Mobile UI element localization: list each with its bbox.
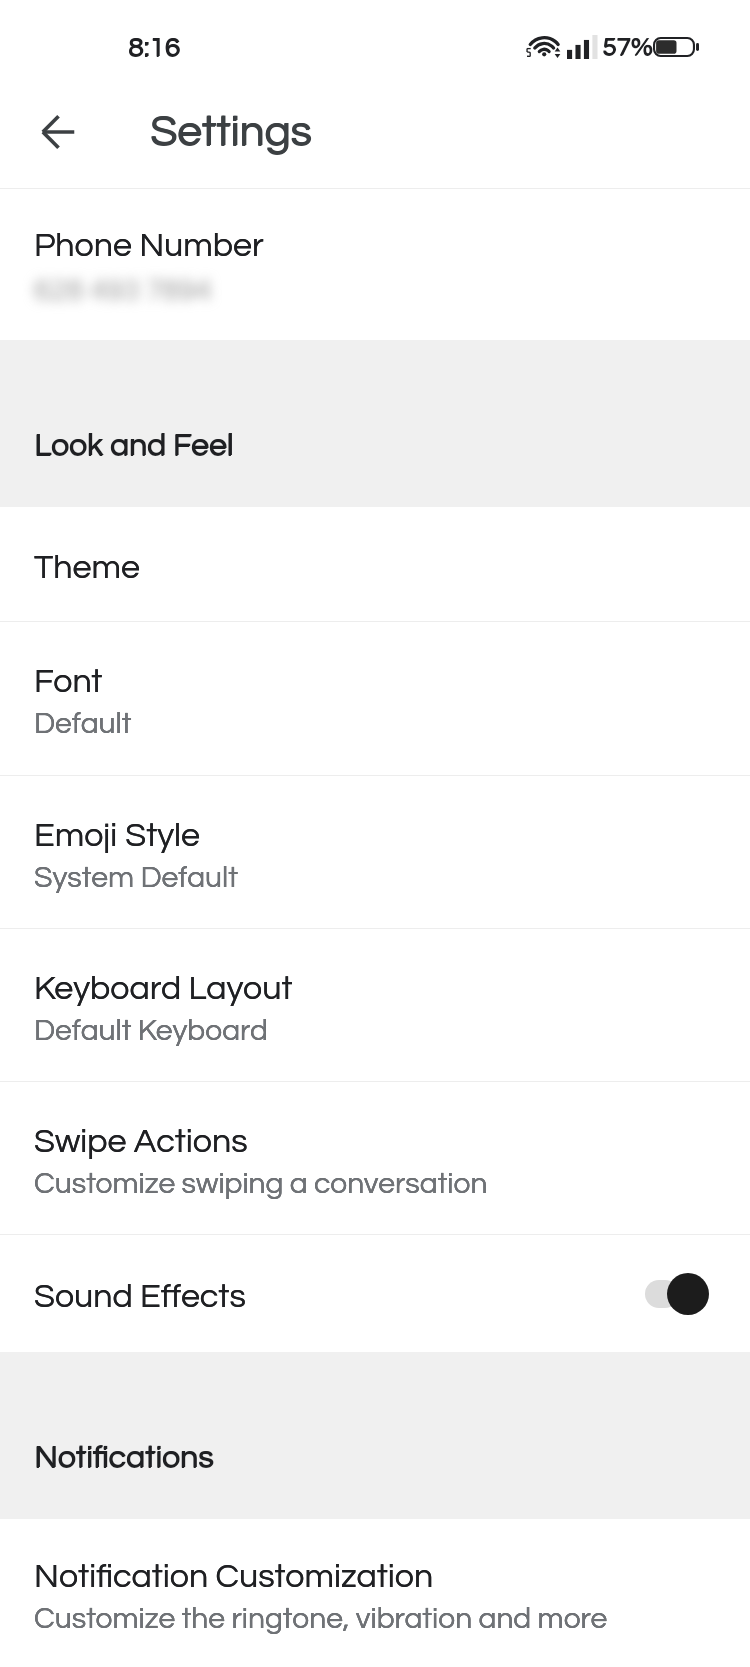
- staticText: Default Keyboard: [34, 1015, 268, 1046]
- staticText: System Default: [34, 862, 238, 893]
- button[interactable]: Notification Customization: [0, 1519, 750, 1667]
- staticText: Notification Customization: [34, 1559, 434, 1594]
- staticText: Notification Customization: [34, 1559, 434, 1594]
- staticText: Look and Feel: [34, 430, 234, 463]
- staticText: Customize the ringtone, vibration and mo…: [34, 1603, 608, 1634]
- staticText: Sound Effects: [34, 1279, 246, 1314]
- staticText: Emoji Style: [34, 818, 201, 853]
- staticText: Theme: [34, 550, 140, 585]
- staticText: Notifications: [34, 1441, 214, 1474]
- staticText: Font: [34, 664, 103, 699]
- staticText: Customize the ringtone, vibration and mo…: [34, 1603, 608, 1634]
- staticText: Look and Feel: [34, 429, 234, 462]
- staticText: Look and Feel: [35, 429, 235, 462]
- staticText: Swipe Actions: [34, 1124, 248, 1159]
- staticText: Emoji Style: [34, 818, 201, 853]
- staticText: Default Keyboard: [34, 1015, 268, 1046]
- staticText: Theme: [34, 550, 140, 585]
- staticText: Font: [34, 664, 103, 699]
- staticText: 57%: [602, 34, 653, 61]
- staticText: 628 493 7894: [34, 275, 212, 306]
- button[interactable]: Emoji Style: [0, 776, 750, 928]
- staticText: Sound Effects: [34, 1279, 246, 1314]
- staticText: Default Keyboard: [34, 1015, 268, 1046]
- staticText: Default: [34, 708, 132, 739]
- staticText: Default: [34, 708, 132, 739]
- staticText: Phone Number: [34, 228, 264, 263]
- button[interactable]: Theme: [0, 507, 750, 621]
- staticText: Phone Number: [34, 228, 264, 263]
- staticText: Customize swiping a conversation: [34, 1168, 488, 1199]
- button[interactable]: Sound Effects: [0, 1235, 750, 1352]
- staticText: Swipe Actions: [34, 1124, 248, 1159]
- staticText: Notification Customization: [34, 1559, 434, 1594]
- staticText: 8:16: [128, 33, 180, 62]
- button[interactable]: Back: [18, 92, 98, 172]
- staticText: Customize the ringtone, vibration and mo…: [34, 1603, 608, 1634]
- staticText: Swipe Actions: [34, 1124, 248, 1159]
- staticText: Settings: [150, 110, 312, 155]
- staticText: Customize swiping a conversation: [34, 1168, 488, 1199]
- staticText: Sound Effects: [34, 1279, 246, 1314]
- staticText: System Default: [34, 862, 238, 893]
- staticText: Settings: [150, 109, 312, 154]
- staticText: Settings: [151, 109, 313, 154]
- button[interactable]: Phone Number: [0, 189, 750, 340]
- button[interactable]: Sound Effects toggle: [644, 1270, 716, 1318]
- staticText: Keyboard Layout: [34, 971, 293, 1006]
- staticText: 8:16: [128, 34, 180, 63]
- button[interactable]: Keyboard Layout: [0, 929, 750, 1081]
- staticText: Customize swiping a conversation: [34, 1168, 488, 1199]
- button[interactable]: Font: [0, 622, 750, 775]
- staticText: System Default: [34, 862, 238, 893]
- staticText: Default: [34, 708, 132, 739]
- staticText: 57%: [603, 34, 654, 61]
- staticText: Theme: [34, 550, 140, 585]
- staticText: Notifications: [35, 1441, 215, 1474]
- staticText: Font: [34, 664, 103, 699]
- staticText: Phone Number: [34, 228, 264, 263]
- staticText: Keyboard Layout: [34, 971, 293, 1006]
- staticText: Emoji Style: [34, 818, 201, 853]
- staticText: Keyboard Layout: [34, 971, 293, 1006]
- staticText: Notifications: [34, 1442, 214, 1475]
- staticText: 57%: [602, 35, 653, 62]
- staticText: 8:16: [129, 33, 181, 62]
- button[interactable]: Swipe Actions: [0, 1082, 750, 1234]
